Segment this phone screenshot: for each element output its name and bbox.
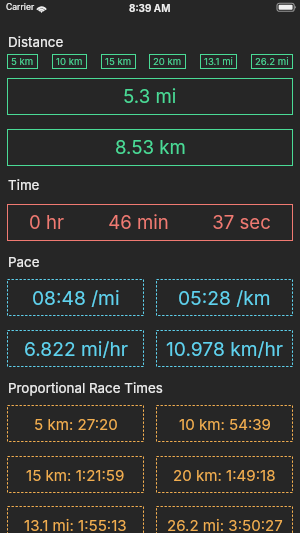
staticText: 37 sec — [212, 211, 271, 234]
other: Battery full — [277, 3, 296, 12]
staticText: 13.1 mi — [204, 56, 233, 68]
staticText: Pace — [8, 254, 40, 270]
staticText: 10 km — [56, 56, 83, 68]
button[interactable]: 15 km — [101, 54, 136, 69]
button[interactable]: 10 km — [52, 54, 87, 69]
other: Wi-Fi signal — [36, 4, 47, 12]
staticText: Proportional Race Times — [8, 380, 163, 396]
staticText: Distance — [8, 34, 64, 50]
staticText: 46 min — [108, 211, 169, 234]
staticText: 13.1 mi: 1:55:13 — [24, 516, 127, 533]
button[interactable]: 5 km: 27:20 — [7, 405, 144, 442]
button[interactable]: 13.1 mi: 1:55:13 — [7, 506, 144, 533]
button[interactable]: 05:28 /km — [156, 279, 293, 316]
staticText: 20 km: 1:49:18 — [173, 466, 276, 484]
staticText: 15 km: 1:21:59 — [26, 466, 125, 484]
button[interactable]: 0 hr — [7, 204, 293, 241]
staticText: 05:28 /km — [178, 286, 271, 309]
button[interactable]: 6.822 mi/hr — [7, 330, 144, 367]
button[interactable]: 20 km — [149, 54, 186, 69]
button[interactable]: 15 km: 1:21:59 — [7, 456, 144, 493]
button[interactable]: 10 km: 54:39 — [156, 405, 293, 442]
button[interactable]: 10.978 km/hr — [156, 330, 293, 367]
staticText: 6.822 mi/hr — [24, 337, 128, 360]
button[interactable]: 26.2 mi — [251, 54, 293, 69]
staticText: 10.978 km/hr — [166, 337, 284, 360]
staticText: 8.53 km — [115, 136, 186, 159]
staticText: 0 hr — [29, 211, 64, 234]
staticText: 26.2 mi: 3:50:27 — [167, 516, 283, 533]
staticText: 5.3 mi — [123, 85, 177, 108]
button[interactable]: 8.53 km — [7, 129, 293, 166]
staticText: 5 km: 27:20 — [34, 415, 118, 433]
staticText: 26.2 mi — [255, 56, 289, 68]
staticText: 5 km — [11, 56, 34, 68]
button[interactable]: 5.3 mi — [7, 78, 293, 115]
staticText: Time — [8, 177, 40, 193]
staticText: 15 km — [105, 56, 132, 68]
button[interactable]: 20 km: 1:49:18 — [156, 456, 293, 493]
button[interactable]: 13.1 mi — [200, 54, 237, 69]
staticText: 8:39 AM — [129, 2, 171, 14]
button[interactable]: 26.2 mi: 3:50:27 — [156, 506, 293, 533]
staticText: Carrier — [6, 2, 35, 12]
staticText: 10 km: 54:39 — [179, 415, 271, 433]
staticText: 20 km — [153, 56, 182, 68]
button[interactable]: 08:48 /mi — [7, 279, 144, 316]
button[interactable]: 5 km — [7, 54, 38, 69]
staticText: 08:48 /mi — [32, 286, 120, 309]
